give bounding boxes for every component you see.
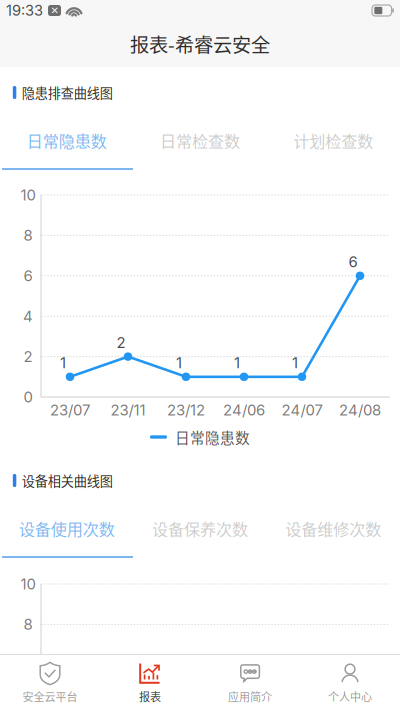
staticText: 设备维修次数 <box>285 517 381 540</box>
staticText: 23/11 <box>110 401 145 419</box>
staticText: 8 <box>23 226 32 244</box>
button[interactable]: 应用简介 <box>200 654 300 711</box>
staticText: 日常检查数 <box>160 129 240 152</box>
button[interactable]: 日常隐患数 <box>0 113 133 168</box>
staticText: 1 <box>234 354 240 372</box>
staticText: 4 <box>23 307 33 325</box>
staticText: 19:33 <box>6 2 43 19</box>
staticText: 个人中心 <box>328 688 372 704</box>
staticText: 6 <box>23 267 32 285</box>
button[interactable]: 设备维修次数 <box>267 501 400 556</box>
staticText: 设备相关曲线图 <box>22 471 113 490</box>
staticText: 1 <box>60 354 66 372</box>
button[interactable]: 计划检查数 <box>267 113 400 168</box>
staticText: 2 <box>116 334 125 352</box>
staticText: 应用简介 <box>228 688 272 704</box>
staticText: 0 <box>23 388 32 406</box>
staticText: 4 <box>23 696 33 711</box>
staticText: 计划检查数 <box>293 129 373 152</box>
staticText: 设备保养次数 <box>152 517 248 540</box>
staticText: 24/07 <box>281 401 322 419</box>
button[interactable]: 报表 <box>100 654 200 711</box>
button[interactable]: 设备保养次数 <box>133 501 267 556</box>
staticText: 报表-希睿云安全 <box>130 30 270 58</box>
staticText: 隐患排查曲线图 <box>22 83 113 102</box>
staticText: 日常隐患数 <box>175 426 250 448</box>
staticText: 1 <box>176 354 182 372</box>
staticText: 6 <box>348 253 357 271</box>
staticText: 1 <box>292 354 298 372</box>
staticText: 24/08 <box>339 401 381 419</box>
staticText: 23/07 <box>50 401 90 419</box>
staticText: 10 <box>20 186 35 204</box>
staticText: 2 <box>23 348 32 366</box>
staticText: 设备使用次数 <box>19 517 115 540</box>
button[interactable]: 日常检查数 <box>133 113 267 168</box>
button[interactable]: 设备使用次数 <box>0 501 133 556</box>
button[interactable]: 个人中心 <box>300 654 400 711</box>
staticText: 24/06 <box>223 401 265 419</box>
staticText: 8 <box>23 615 32 633</box>
staticText: 23/12 <box>167 401 205 419</box>
staticText: ✕ <box>50 5 58 16</box>
staticText: 安全云平台 <box>22 688 77 704</box>
staticText: 10 <box>20 575 35 593</box>
staticText: 日常隐患数 <box>27 129 107 152</box>
staticText: 报表 <box>139 688 161 704</box>
button[interactable]: 安全云平台 <box>0 654 100 711</box>
